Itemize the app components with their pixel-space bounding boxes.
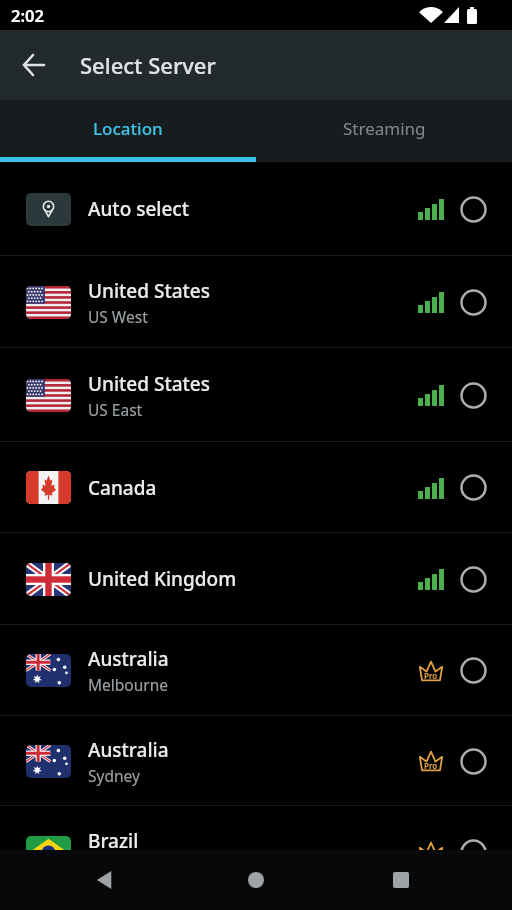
staticText: 2:02: [11, 4, 44, 26]
staticText: Auto select: [88, 196, 189, 222]
button[interactable]: [96, 871, 114, 889]
button[interactable]: [393, 872, 409, 888]
button[interactable]: [247, 871, 265, 889]
button[interactable]: Streaming: [256, 100, 512, 157]
staticText: Rio de Janeiro: [88, 856, 189, 877]
button[interactable]: Location: [0, 100, 256, 157]
staticText: US West: [88, 306, 148, 327]
staticText: Pro: [424, 670, 438, 681]
button[interactable]: United States: [0, 348, 512, 442]
staticText: Australia: [88, 737, 169, 763]
staticText: United Kingdom: [88, 566, 237, 592]
staticText: US East: [88, 399, 143, 420]
staticText: Location: [93, 117, 163, 140]
button[interactable]: [14, 45, 54, 85]
staticText: Australia: [88, 646, 169, 672]
staticText: Melbourne: [88, 674, 169, 695]
button[interactable]: Canada: [0, 442, 512, 533]
staticText: Canada: [88, 475, 157, 501]
staticText: United States: [88, 371, 210, 397]
button[interactable]: Brazil: [0, 806, 512, 898]
button[interactable]: Australia: [0, 716, 512, 806]
button[interactable]: United States: [0, 256, 512, 348]
button[interactable]: United Kingdom: [0, 533, 512, 625]
button[interactable]: Australia: [0, 625, 512, 716]
staticText: Streaming: [343, 117, 426, 140]
staticText: United States: [88, 278, 210, 304]
staticText: Select Server: [80, 50, 216, 80]
staticText: Sydney: [88, 765, 140, 786]
staticText: Brazil: [88, 828, 139, 854]
staticText: Pro: [424, 760, 438, 771]
button[interactable]: Auto select: [0, 162, 512, 256]
